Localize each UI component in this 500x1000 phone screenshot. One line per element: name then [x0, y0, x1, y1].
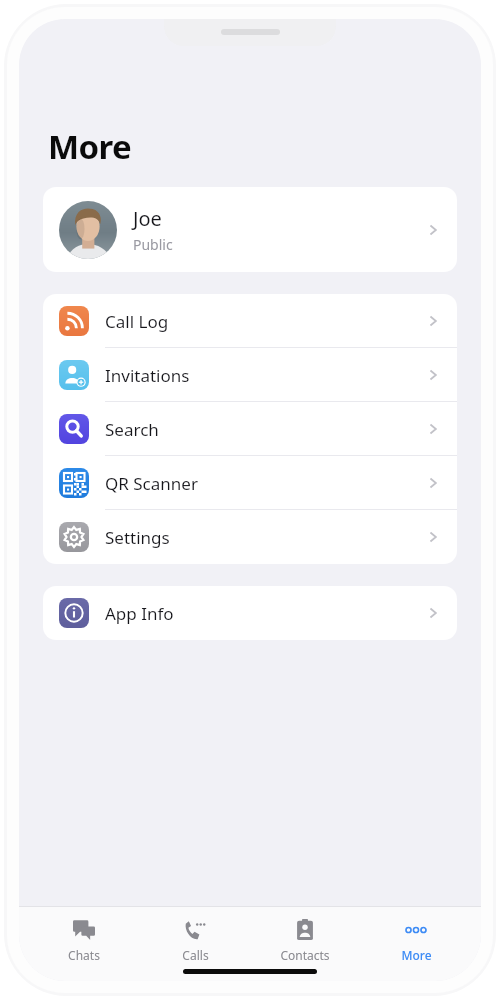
staticText: Search — [105, 418, 159, 441]
staticText: Public — [133, 235, 173, 254]
button[interactable]: Contacts — [259, 916, 351, 965]
staticText: More — [401, 947, 432, 963]
button[interactable]: Calls — [149, 916, 241, 965]
staticText: Calls — [182, 947, 209, 963]
staticText: Invitations — [105, 364, 190, 387]
button[interactable]: Settings — [43, 510, 457, 564]
staticText: Chats — [68, 947, 100, 963]
staticText: Settings — [105, 526, 170, 549]
staticText: QR Scanner — [105, 472, 198, 495]
button[interactable]: Search — [43, 402, 457, 456]
staticText: Call Log — [105, 310, 169, 333]
button[interactable]: Call Log — [43, 294, 457, 348]
staticText: More — [48, 124, 132, 169]
button[interactable]: Joe — [43, 187, 457, 272]
button[interactable]: App Info — [43, 586, 457, 640]
staticText: App Info — [105, 602, 174, 625]
button[interactable]: More — [370, 916, 462, 965]
staticText: Contacts — [280, 947, 330, 963]
button[interactable]: QR Scanner — [43, 456, 457, 510]
button[interactable]: Invitations — [43, 348, 457, 402]
staticText: Joe — [133, 205, 162, 232]
button[interactable]: Chats — [38, 916, 130, 965]
